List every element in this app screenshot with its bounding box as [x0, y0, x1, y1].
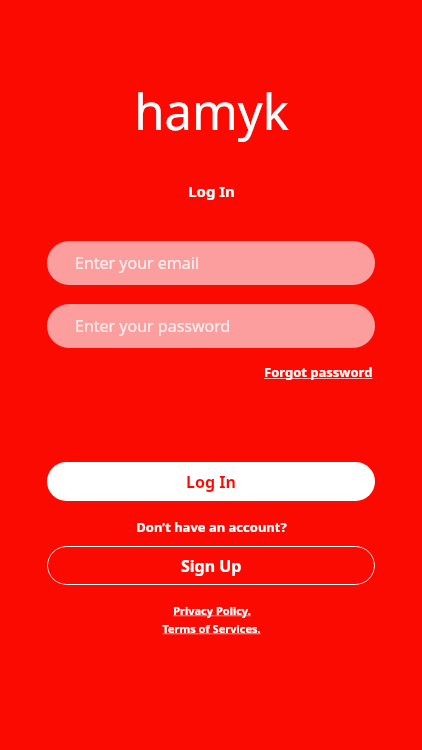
staticText: Enter your email — [75, 252, 200, 274]
button[interactable]: Enter your email — [47, 241, 375, 285]
staticText: Don’t have an account? — [136, 518, 287, 536]
button[interactable]: Enter your password — [47, 304, 375, 348]
staticText: Enter your password — [75, 315, 231, 337]
staticText: Log In — [188, 181, 235, 201]
button[interactable]: Forgot password — [262, 360, 375, 384]
button[interactable]: Sign Up — [47, 546, 375, 585]
button[interactable]: Log In — [47, 462, 375, 501]
staticText: Sign Up — [181, 555, 242, 577]
button[interactable]: Privacy Policy. — [171, 602, 253, 619]
button[interactable]: Terms of Services. — [160, 620, 263, 637]
staticText: hamyk — [134, 78, 289, 145]
staticText: Log In — [186, 471, 236, 493]
staticText: Forgot password — [264, 363, 373, 381]
staticText: Terms of Services. — [162, 621, 261, 636]
staticText: Privacy Policy. — [173, 603, 251, 618]
